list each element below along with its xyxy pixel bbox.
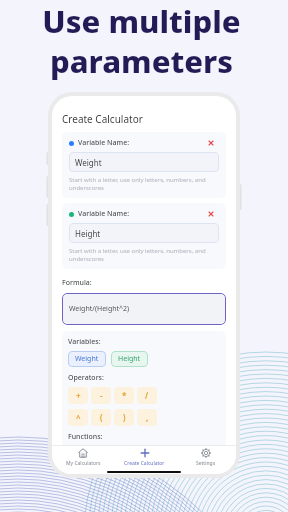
button[interactable]: ( <box>91 409 111 426</box>
button[interactable]: ^ <box>68 409 88 426</box>
staticText: Settings <box>196 460 216 467</box>
staticText: Variable Name: <box>78 209 130 219</box>
button[interactable]: / <box>137 387 157 404</box>
staticText: Use multiple parameters <box>42 0 241 82</box>
staticText: ( <box>100 412 103 423</box>
staticText: , <box>146 412 149 423</box>
staticText: - <box>100 390 103 401</box>
staticText: + <box>76 390 81 401</box>
staticText: Create Calculator <box>62 112 143 126</box>
button[interactable]: Settings <box>175 446 236 469</box>
staticText: Height <box>75 228 101 239</box>
button[interactable]: Remove variable <box>208 140 214 146</box>
button[interactable]: Weight <box>68 351 106 367</box>
button[interactable]: ) <box>114 409 134 426</box>
staticText: Functions: <box>68 432 103 442</box>
button[interactable] <box>68 447 100 463</box>
button[interactable]: Height <box>111 351 148 367</box>
staticText: Height <box>118 354 141 364</box>
staticText: Start with a letter, use only letters, n… <box>69 247 219 263</box>
button[interactable] <box>105 447 137 463</box>
staticText: My Calculators <box>66 460 101 467</box>
staticText: Weight/(Height^2) <box>69 304 130 314</box>
button[interactable]: , <box>137 409 157 426</box>
staticText: Weight <box>75 354 99 364</box>
button[interactable]: * <box>114 387 134 404</box>
staticText: Operators: <box>68 373 104 383</box>
staticText: ) <box>123 412 126 423</box>
button[interactable]: + <box>68 387 88 404</box>
button[interactable]: My Calculators <box>52 446 114 469</box>
staticText: Formula: <box>62 278 92 288</box>
staticText: Create Calculator <box>124 460 165 467</box>
button[interactable]: Create Calculator <box>114 446 175 469</box>
staticText: Variables: <box>68 337 101 347</box>
staticText: ^ <box>76 412 81 423</box>
staticText: / <box>145 390 149 401</box>
button[interactable]: - <box>91 387 111 404</box>
staticText: Weight <box>75 157 102 168</box>
staticText: Variable Name: <box>78 138 130 148</box>
button[interactable]: Remove variable <box>208 211 214 217</box>
staticText: Start with a letter, use only letters, n… <box>69 176 219 192</box>
staticText: * <box>122 390 127 401</box>
button[interactable] <box>142 447 174 463</box>
